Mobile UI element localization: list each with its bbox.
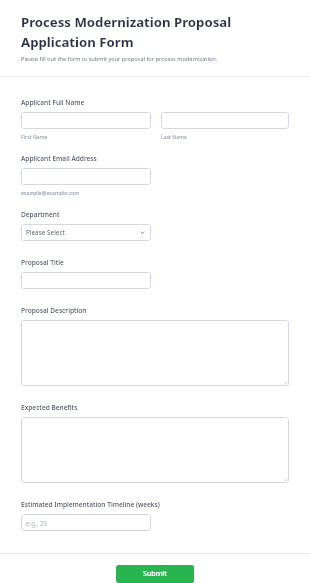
staticText: example@example.com bbox=[21, 189, 80, 196]
button[interactable] bbox=[21, 168, 151, 185]
staticText: e.g., 23 bbox=[26, 519, 47, 527]
staticText: Please fill out the form to submit your … bbox=[21, 55, 218, 63]
staticText: Please Select bbox=[26, 228, 65, 237]
staticText: Department bbox=[21, 210, 60, 219]
staticText: First Name bbox=[21, 133, 48, 140]
button[interactable]: Please Select bbox=[21, 224, 151, 241]
button[interactable] bbox=[21, 112, 151, 129]
button[interactable]: Submit bbox=[116, 565, 194, 583]
staticText: Expected Benefits bbox=[21, 403, 78, 412]
staticText: Proposal Description bbox=[21, 306, 87, 315]
staticText: Submit bbox=[143, 569, 167, 579]
staticText: Process Modernization Proposal bbox=[21, 13, 232, 31]
staticText: Proposal Title bbox=[21, 258, 64, 267]
button[interactable]: e.g., 23 bbox=[21, 514, 151, 531]
staticText: Application Form bbox=[21, 33, 134, 51]
button[interactable] bbox=[161, 112, 289, 129]
button[interactable] bbox=[21, 272, 151, 289]
button[interactable] bbox=[21, 417, 289, 483]
button[interactable] bbox=[21, 320, 289, 386]
staticText: Applicant Email Address bbox=[21, 154, 97, 163]
staticText: Estimated Implementation Timeline (weeks… bbox=[21, 500, 160, 509]
staticText: Applicant Full Name bbox=[21, 98, 85, 107]
staticText: Last Name bbox=[161, 133, 187, 140]
